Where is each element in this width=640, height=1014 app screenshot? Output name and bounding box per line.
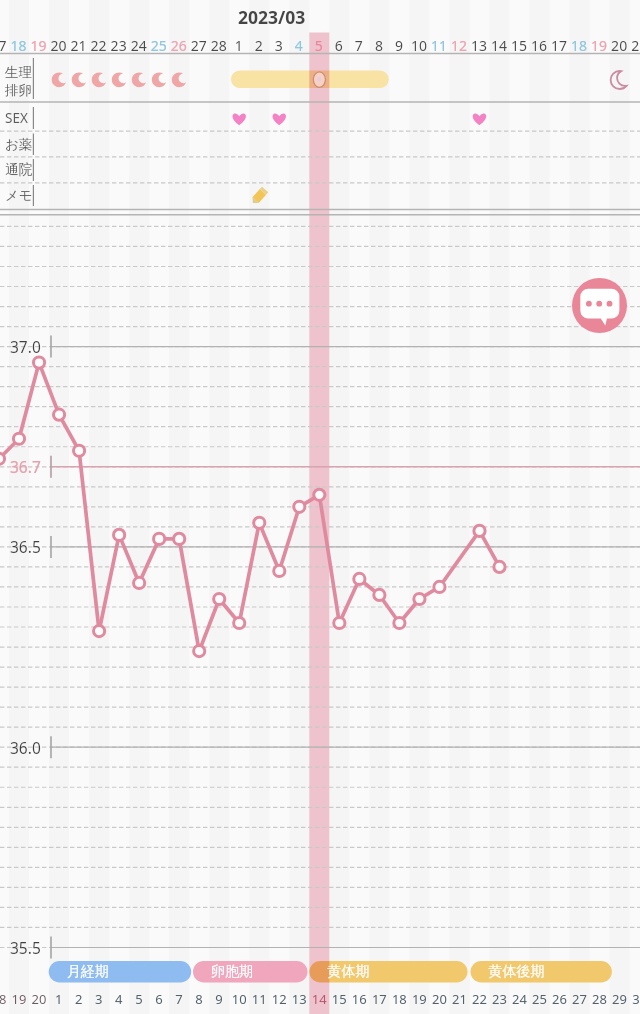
button[interactable]: Chat <box>572 278 627 333</box>
